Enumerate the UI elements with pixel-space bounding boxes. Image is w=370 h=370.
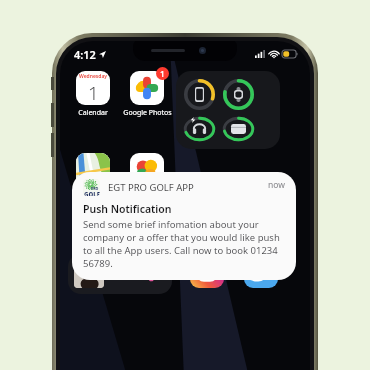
staticText: EGT PRO GOLF APP: [108, 181, 194, 194]
button[interactable]: Batteries widget: [176, 71, 280, 149]
staticText: Google Photos: [123, 108, 172, 118]
button[interactable]: [236, 254, 286, 288]
staticText: GOLF: [77, 224, 109, 235]
button[interactable]: 2: [176, 201, 226, 248]
staticText: 1: [160, 68, 165, 79]
staticText: Wednesday: [79, 73, 108, 80]
staticText: 1: [88, 80, 99, 105]
button[interactable]: SafeAmericaCr...: [122, 201, 172, 248]
staticText: 2: [220, 251, 225, 262]
staticText: now: [268, 179, 285, 191]
staticText: Wallet: [245, 238, 266, 248]
button[interactable]: [122, 153, 172, 187]
staticText: 4:12: [74, 47, 96, 62]
staticText: Send some brief infomation about your co…: [83, 218, 285, 270]
staticText: Mail: [194, 238, 208, 248]
staticText: Push Notification: [83, 202, 172, 216]
staticText: PRO: [93, 216, 106, 224]
button[interactable]: 2: [182, 254, 232, 288]
staticText: PRO: [91, 186, 99, 191]
staticText: SafeAmericaCr...: [122, 238, 172, 248]
staticText: GOLF: [84, 191, 100, 196]
button[interactable]: [68, 153, 118, 187]
button[interactable]: Wallet: [230, 201, 280, 248]
button[interactable]: Wednesday: [68, 71, 118, 118]
staticText: EGT Pro Golf: [72, 238, 114, 248]
button[interactable]: Music widget: [68, 254, 172, 294]
staticText: Calendar: [78, 108, 108, 118]
button[interactable]: 1: [122, 71, 172, 118]
button[interactable]: PRO: [72, 172, 296, 280]
button[interactable]: PRO: [68, 201, 118, 248]
